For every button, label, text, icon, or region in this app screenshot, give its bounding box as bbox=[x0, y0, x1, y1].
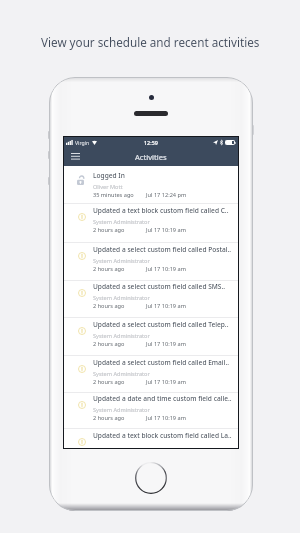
staticText: System Administrator bbox=[93, 370, 150, 378]
staticText: System Administrator bbox=[93, 257, 150, 265]
staticText: Updated a text block custom field called… bbox=[93, 206, 229, 215]
staticText: Oliver Mott bbox=[93, 183, 123, 191]
button[interactable]: Logged In bbox=[64, 166, 238, 204]
staticText: Jul 17 10:19 am bbox=[146, 414, 186, 422]
staticText: Updated a select custom field called Ema… bbox=[93, 358, 230, 367]
staticText: 2 hours ago bbox=[93, 414, 125, 422]
staticText: 35 minutes ago bbox=[93, 191, 134, 199]
staticText: Logged In bbox=[93, 171, 125, 180]
staticText: 12:59 bbox=[144, 139, 158, 146]
button[interactable]: Updated a date and time custom field cal… bbox=[64, 392, 238, 430]
button[interactable]: Updated a select custom field called Tel… bbox=[64, 318, 238, 356]
button[interactable]: Open navigation menu bbox=[68, 150, 82, 164]
staticText: 2 hours ago bbox=[93, 378, 125, 386]
staticText: View your schedule and recent activities bbox=[41, 34, 260, 50]
button[interactable]: Updated a text block custom field called… bbox=[64, 429, 238, 467]
button[interactable]: Updated a select custom field called Pos… bbox=[64, 243, 238, 281]
staticText: 2 hours ago bbox=[93, 340, 125, 348]
staticText: Updated a select custom field called Pos… bbox=[93, 245, 232, 254]
staticText: System Administrator bbox=[93, 218, 150, 226]
button[interactable]: Updated a text block custom field called… bbox=[64, 204, 238, 242]
staticText: Updated a date and time custom field cal… bbox=[93, 394, 232, 403]
staticText: System Administrator bbox=[93, 332, 150, 340]
staticText: Jul 17 10:19 am bbox=[146, 265, 186, 273]
staticText: Jul 17 10:19 am bbox=[146, 340, 186, 348]
staticText: 2 hours ago bbox=[93, 226, 125, 234]
staticText: Jul 17 10:19 am bbox=[146, 378, 186, 386]
staticText: Updated a select custom field called SMS… bbox=[93, 282, 226, 291]
staticText: System Administrator bbox=[93, 406, 150, 414]
staticText: 2 hours ago bbox=[93, 265, 125, 273]
button[interactable]: Updated a select custom field called Ema… bbox=[64, 356, 238, 394]
staticText: Updated a text block custom field called… bbox=[93, 431, 232, 440]
staticText: System Administrator bbox=[93, 294, 150, 302]
staticText: Jul 17 10:19 am bbox=[146, 302, 186, 310]
staticText: 2 hours ago bbox=[93, 302, 125, 310]
staticText: Jul 17 10:19 am bbox=[146, 226, 186, 234]
staticText: Updated a select custom field called Tel… bbox=[93, 320, 229, 329]
staticText: Activities bbox=[135, 152, 167, 162]
staticText: Jul 17 12:24 pm bbox=[146, 191, 187, 199]
button[interactable]: Updated a select custom field called SMS… bbox=[64, 280, 238, 318]
staticText: Virgin bbox=[75, 139, 90, 146]
